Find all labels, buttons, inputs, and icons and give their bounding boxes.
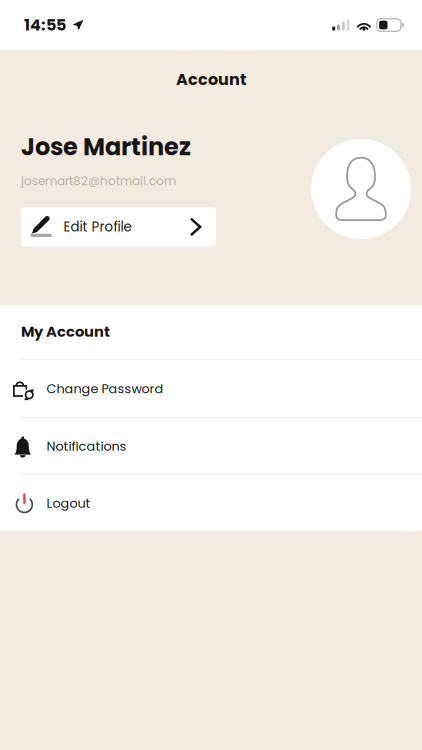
staticText: Account [176, 68, 246, 91]
staticText: My Account [21, 321, 110, 342]
button[interactable]: Change Password [0, 360, 422, 417]
staticText: Edit Profile [63, 218, 131, 236]
button[interactable]: Notifications [0, 418, 422, 474]
staticText: Change Password [46, 380, 163, 398]
staticText: josemart82@hotmail.com [21, 173, 176, 189]
staticText: 14:55 [24, 14, 66, 36]
staticText: Logout [46, 494, 90, 512]
staticText: Jose Martinez [21, 130, 191, 164]
button[interactable]: Edit Profile [21, 207, 216, 246]
staticText: Notifications [46, 437, 126, 455]
button[interactable]: Logout [0, 475, 422, 531]
